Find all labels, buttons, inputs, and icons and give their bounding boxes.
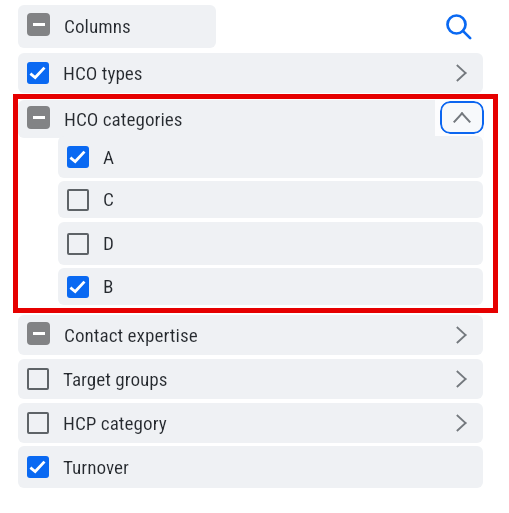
staticText: HCO categories: [64, 108, 183, 131]
button[interactable]: Columns: [18, 5, 216, 48]
staticText: B: [103, 275, 114, 298]
staticText: A: [103, 146, 115, 169]
staticText: Columns: [64, 15, 131, 38]
button[interactable]: D: [58, 222, 483, 265]
staticText: HCO types: [63, 62, 143, 85]
staticText: Turnover: [63, 456, 129, 479]
button[interactable]: B: [58, 268, 483, 305]
button[interactable]: HCO categories: [18, 100, 483, 138]
button[interactable]: Turnover: [18, 446, 483, 488]
staticText: D: [103, 232, 114, 255]
button[interactable]: A: [58, 136, 483, 178]
button[interactable]: Target groups: [18, 359, 483, 399]
button[interactable]: Search: [434, 2, 479, 47]
button[interactable]: C: [58, 181, 483, 218]
button[interactable]: HCO types: [18, 53, 483, 93]
staticText: C: [103, 188, 114, 211]
button[interactable]: Contact expertise: [18, 315, 483, 355]
button[interactable]: HCP category: [18, 403, 483, 443]
staticText: Contact expertise: [64, 324, 198, 347]
button[interactable]: Collapse HCO categories: [440, 101, 484, 134]
staticText: HCP category: [63, 412, 167, 435]
staticText: Target groups: [63, 368, 168, 391]
